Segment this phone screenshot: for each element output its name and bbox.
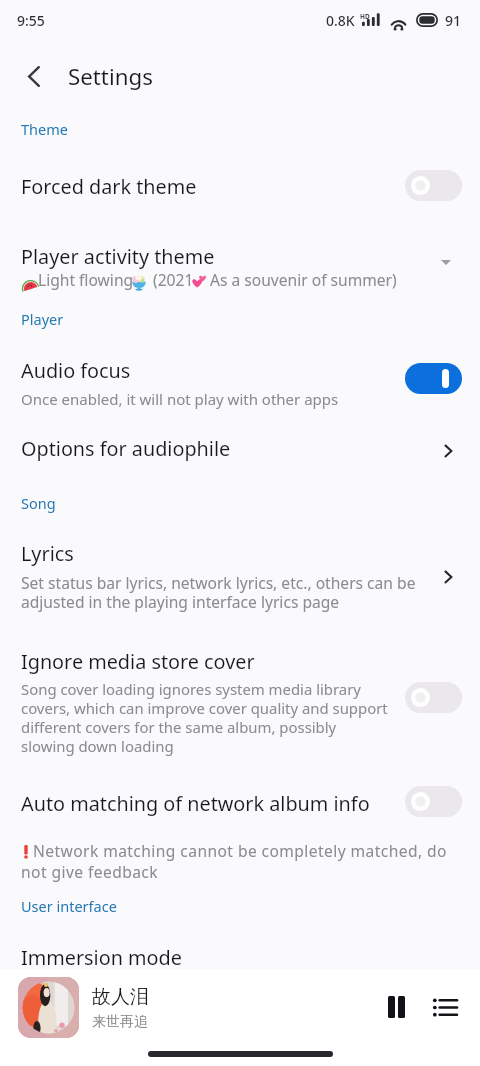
staticText: Player [21, 309, 64, 329]
staticText: Network matching cannot be completely ma… [33, 840, 447, 861]
staticText: User interface [21, 896, 117, 916]
staticText: 来世再追 [92, 1013, 148, 1031]
staticText: 9:55 [17, 11, 45, 30]
button[interactable]: Back [13, 55, 55, 97]
staticText: 0.8K [326, 11, 355, 30]
staticText: Immersion mode [21, 944, 182, 971]
button[interactable] [405, 682, 462, 713]
staticText: Player activity theme [21, 243, 215, 270]
staticText: Once enabled, it will not play with othe… [21, 389, 339, 409]
staticText: Song cover loading ignores system media … [21, 679, 388, 757]
staticText: Ignore media store cover [21, 648, 255, 675]
button[interactable]: Choose player activity theme [429, 243, 463, 277]
button[interactable] [18, 977, 79, 1038]
button[interactable] [405, 786, 462, 817]
staticText: 91 [445, 11, 462, 30]
staticText: Song [21, 493, 56, 513]
staticText: Theme [21, 119, 68, 139]
staticText: not give feedback [21, 861, 158, 882]
staticText: Auto matching of network album info [21, 790, 370, 817]
staticText: Set status bar lyrics, network lyrics, e… [21, 572, 416, 613]
staticText: Forced dark theme [21, 173, 197, 200]
staticText: Lyrics [21, 540, 74, 567]
staticText: Options for audiophile [21, 435, 231, 462]
button[interactable] [0, 163, 480, 209]
button[interactable]: Playlist [421, 977, 469, 1038]
button[interactable] [405, 363, 462, 394]
button[interactable]: Open [431, 560, 465, 594]
button[interactable]: Pause [370, 976, 422, 1037]
staticText: As a souvenir of summer) [210, 269, 397, 290]
staticText: 故人泪 [92, 985, 149, 1009]
staticText: Audio focus [21, 357, 131, 384]
button[interactable] [405, 170, 462, 201]
staticText: Light flowing [38, 269, 134, 290]
staticText: (2021 [153, 269, 194, 290]
button[interactable]: Open [431, 434, 465, 468]
staticText: Settings [68, 61, 153, 91]
staticText: HD [360, 12, 370, 21]
